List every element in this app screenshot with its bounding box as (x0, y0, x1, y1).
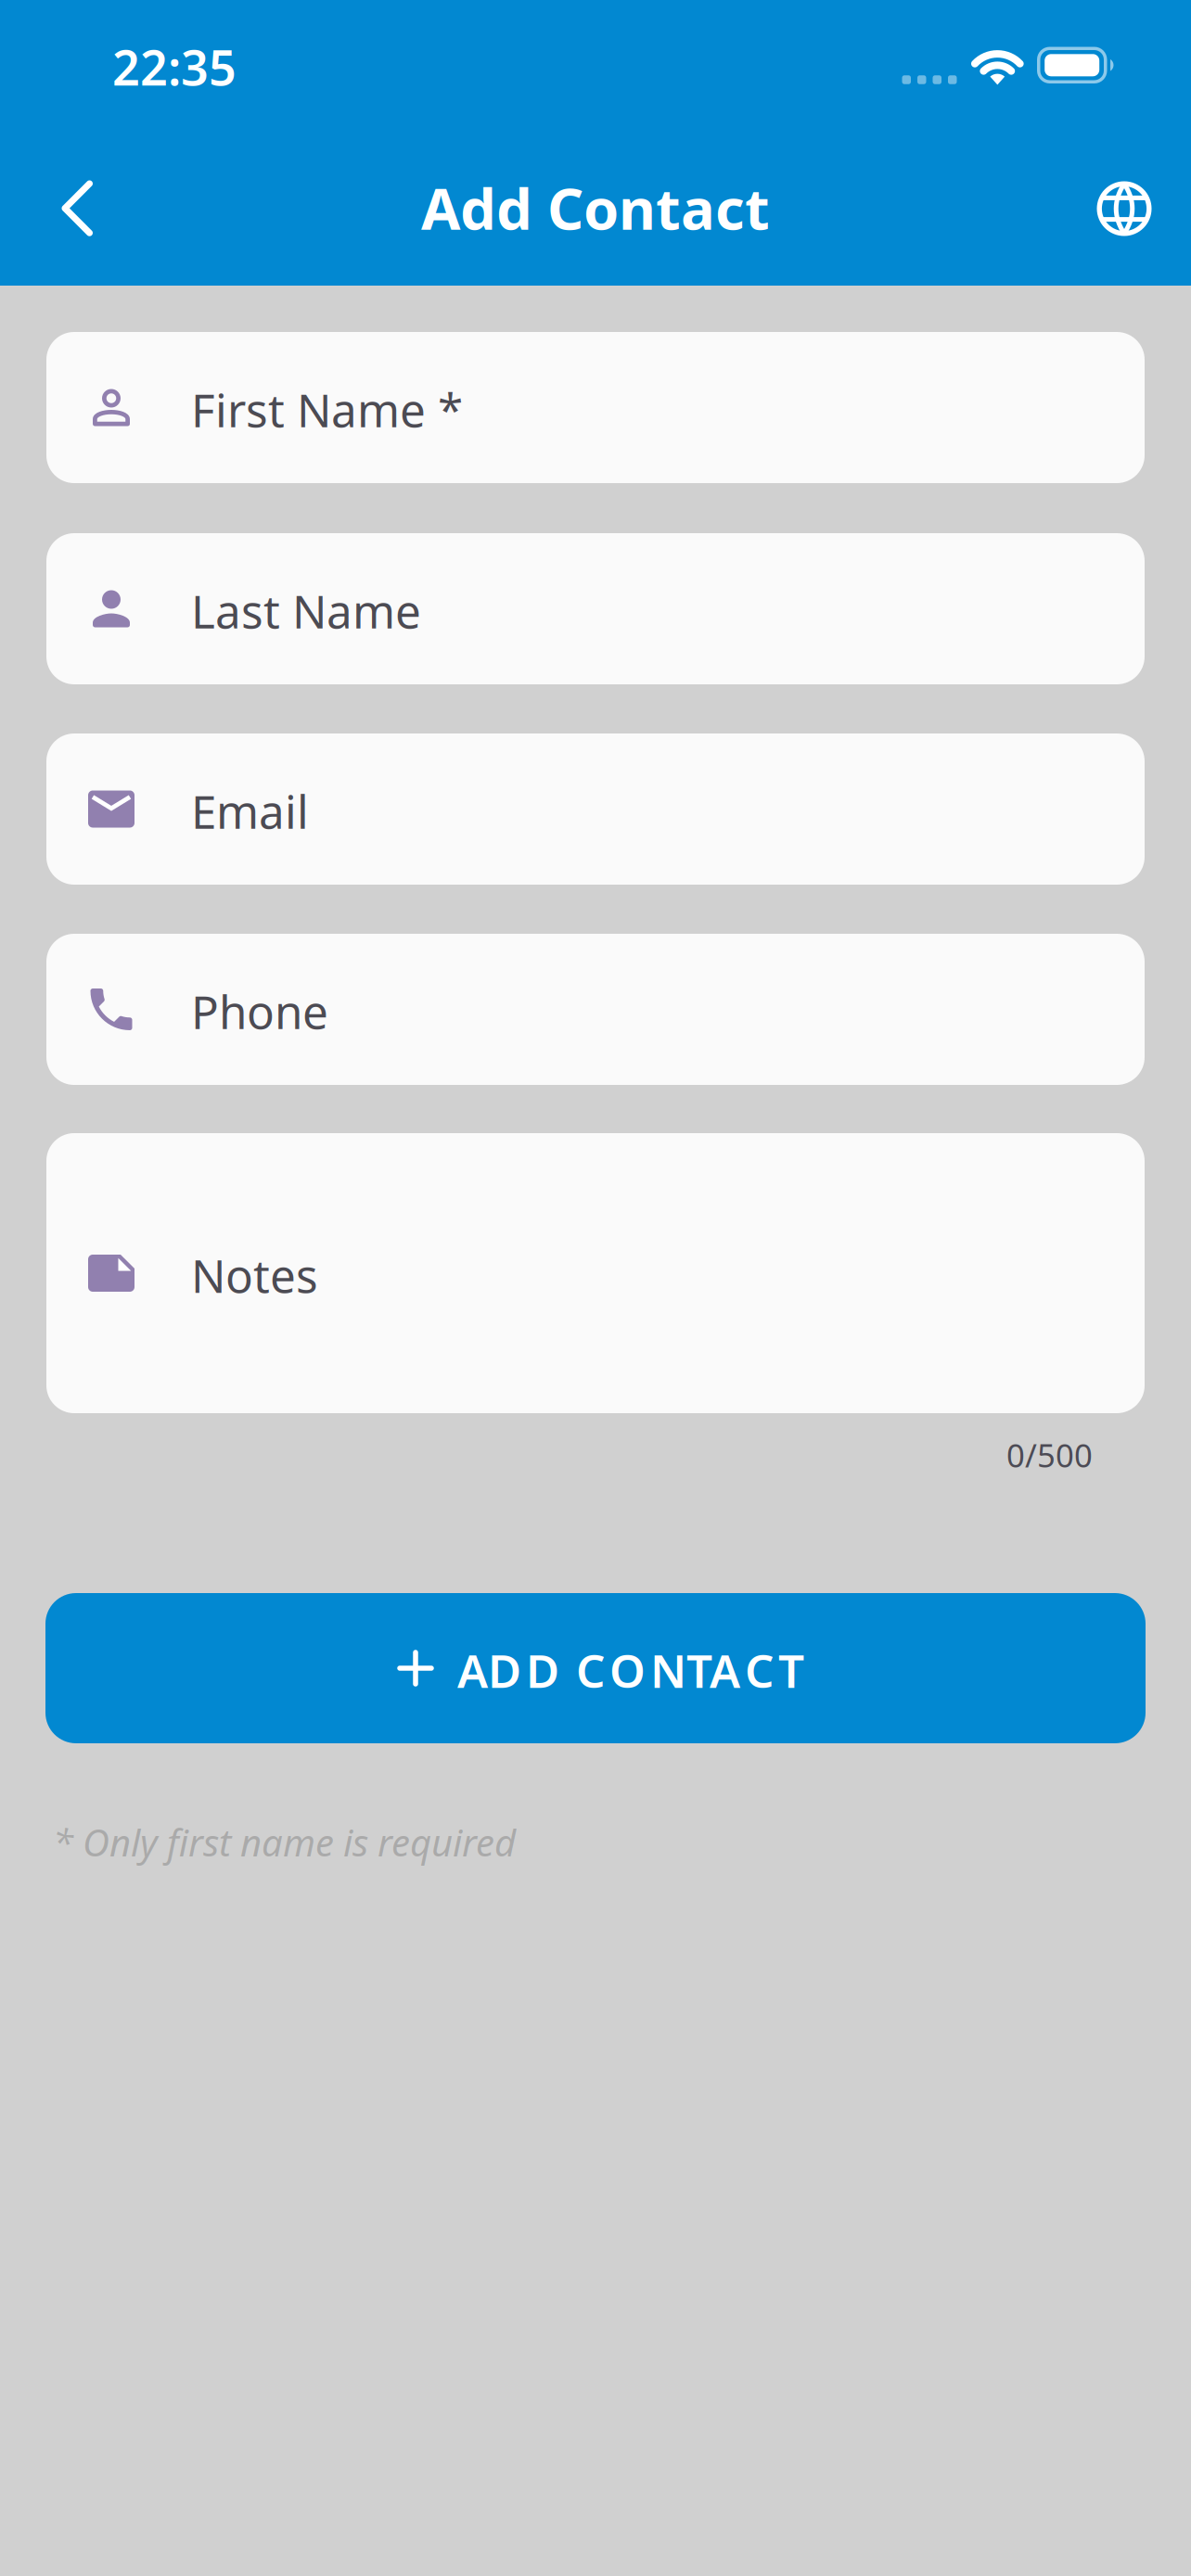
staticText: Add Contact (421, 170, 770, 245)
button[interactable]: Language (1082, 167, 1166, 250)
staticText: 22:35 (112, 35, 237, 99)
button[interactable]: Back (31, 162, 123, 255)
button[interactable]: Notes (46, 1133, 1145, 1413)
button[interactable]: Last Name (46, 533, 1145, 684)
staticText: AD D C O NTA C T (457, 1640, 804, 1700)
staticText: Last Name (191, 580, 421, 641)
staticText: * Only first name is required (53, 1817, 516, 1867)
button[interactable]: First Name * (46, 332, 1145, 483)
staticText: First Name * (191, 379, 463, 440)
button[interactable]: AD D C O NTA C T (45, 1593, 1146, 1743)
staticText: Email (191, 780, 309, 841)
staticText: Notes (191, 1245, 318, 1305)
staticText: 0/500 (1006, 1434, 1093, 1476)
button[interactable]: Email (46, 733, 1145, 885)
staticText: Phone (191, 981, 328, 1042)
button[interactable]: Phone (46, 934, 1145, 1085)
